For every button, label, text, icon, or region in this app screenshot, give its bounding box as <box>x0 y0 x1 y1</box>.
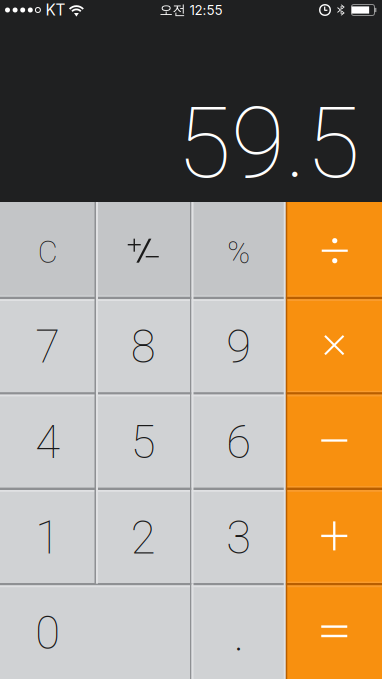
staticText: 6 <box>226 416 251 469</box>
button[interactable]: Divide <box>286 202 382 297</box>
staticText: 7 <box>35 320 60 374</box>
button[interactable]: 6 <box>191 393 286 488</box>
button[interactable]: Multiply <box>286 297 382 393</box>
button[interactable]: 3 <box>191 488 286 584</box>
button[interactable]: 5 <box>95 393 191 488</box>
staticText: 1 <box>35 511 60 564</box>
staticText: 3 <box>226 511 251 564</box>
button[interactable]: C <box>0 202 95 297</box>
staticText: 4 <box>35 416 60 469</box>
staticText: 8 <box>131 320 156 374</box>
button[interactable]: 2 <box>95 488 191 584</box>
button[interactable]: 7 <box>0 297 95 393</box>
button[interactable]: Plus Minus <box>95 202 191 297</box>
button[interactable]: 8 <box>95 297 191 393</box>
button[interactable]: . <box>191 584 286 679</box>
button[interactable]: Minus <box>286 393 382 488</box>
staticText: KT <box>45 1 65 19</box>
button[interactable]: Equals <box>286 584 382 679</box>
button[interactable]: Plus <box>286 488 382 584</box>
staticText: C <box>38 234 58 270</box>
staticText: 2 <box>131 511 156 564</box>
staticText: 5 <box>131 416 156 469</box>
staticText: 9 <box>226 320 251 374</box>
staticText: 0 <box>35 607 60 660</box>
button[interactable]: % <box>191 202 286 297</box>
button[interactable]: 9 <box>191 297 286 393</box>
button[interactable]: 1 <box>0 488 95 584</box>
button[interactable]: 0 <box>0 584 191 679</box>
staticText: . <box>233 601 244 664</box>
staticText: 오전 12:55 <box>159 2 222 18</box>
staticText: % <box>227 235 250 271</box>
button[interactable]: 4 <box>0 393 95 488</box>
staticText: 59.5 <box>177 85 360 201</box>
